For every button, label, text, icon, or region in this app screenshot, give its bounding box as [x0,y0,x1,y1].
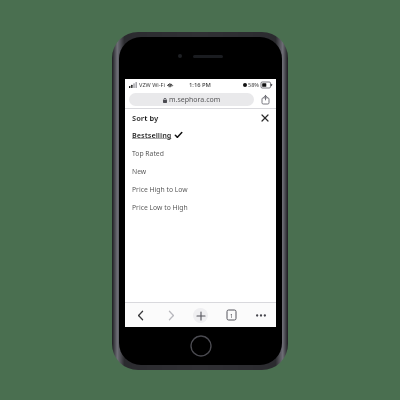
button[interactable]: Forward [163,307,179,323]
button[interactable]: More options [253,307,269,323]
button[interactable]: Price Low to High [125,198,276,216]
button[interactable]: Top Rated [125,144,276,162]
staticText: Price Low to High [132,203,188,212]
staticText: 58% [248,81,259,88]
button[interactable]: New [125,162,276,180]
staticText: Top Rated [132,149,164,158]
other: Home [190,335,212,357]
staticText: 1:16 PM [189,81,212,89]
staticText: m.sephora.com [169,95,221,105]
staticText: VZW Wi-Fi [139,81,165,88]
button[interactable]: Price High to Low [125,180,276,198]
button[interactable]: Back [132,307,148,323]
staticText: 1 [230,312,233,319]
button[interactable]: Address bar m.sephora.com [129,93,254,106]
button[interactable]: Tabs, 1 open [223,307,239,323]
button[interactable]: New tab [193,308,208,323]
button[interactable]: Share [259,93,272,106]
button[interactable]: Close [259,112,270,123]
staticText: Sort by [132,113,159,123]
button[interactable]: Bestselling [125,126,276,144]
staticText: Bestselling [132,130,172,140]
staticText: New [132,167,147,176]
staticText: Price High to Low [132,185,188,194]
